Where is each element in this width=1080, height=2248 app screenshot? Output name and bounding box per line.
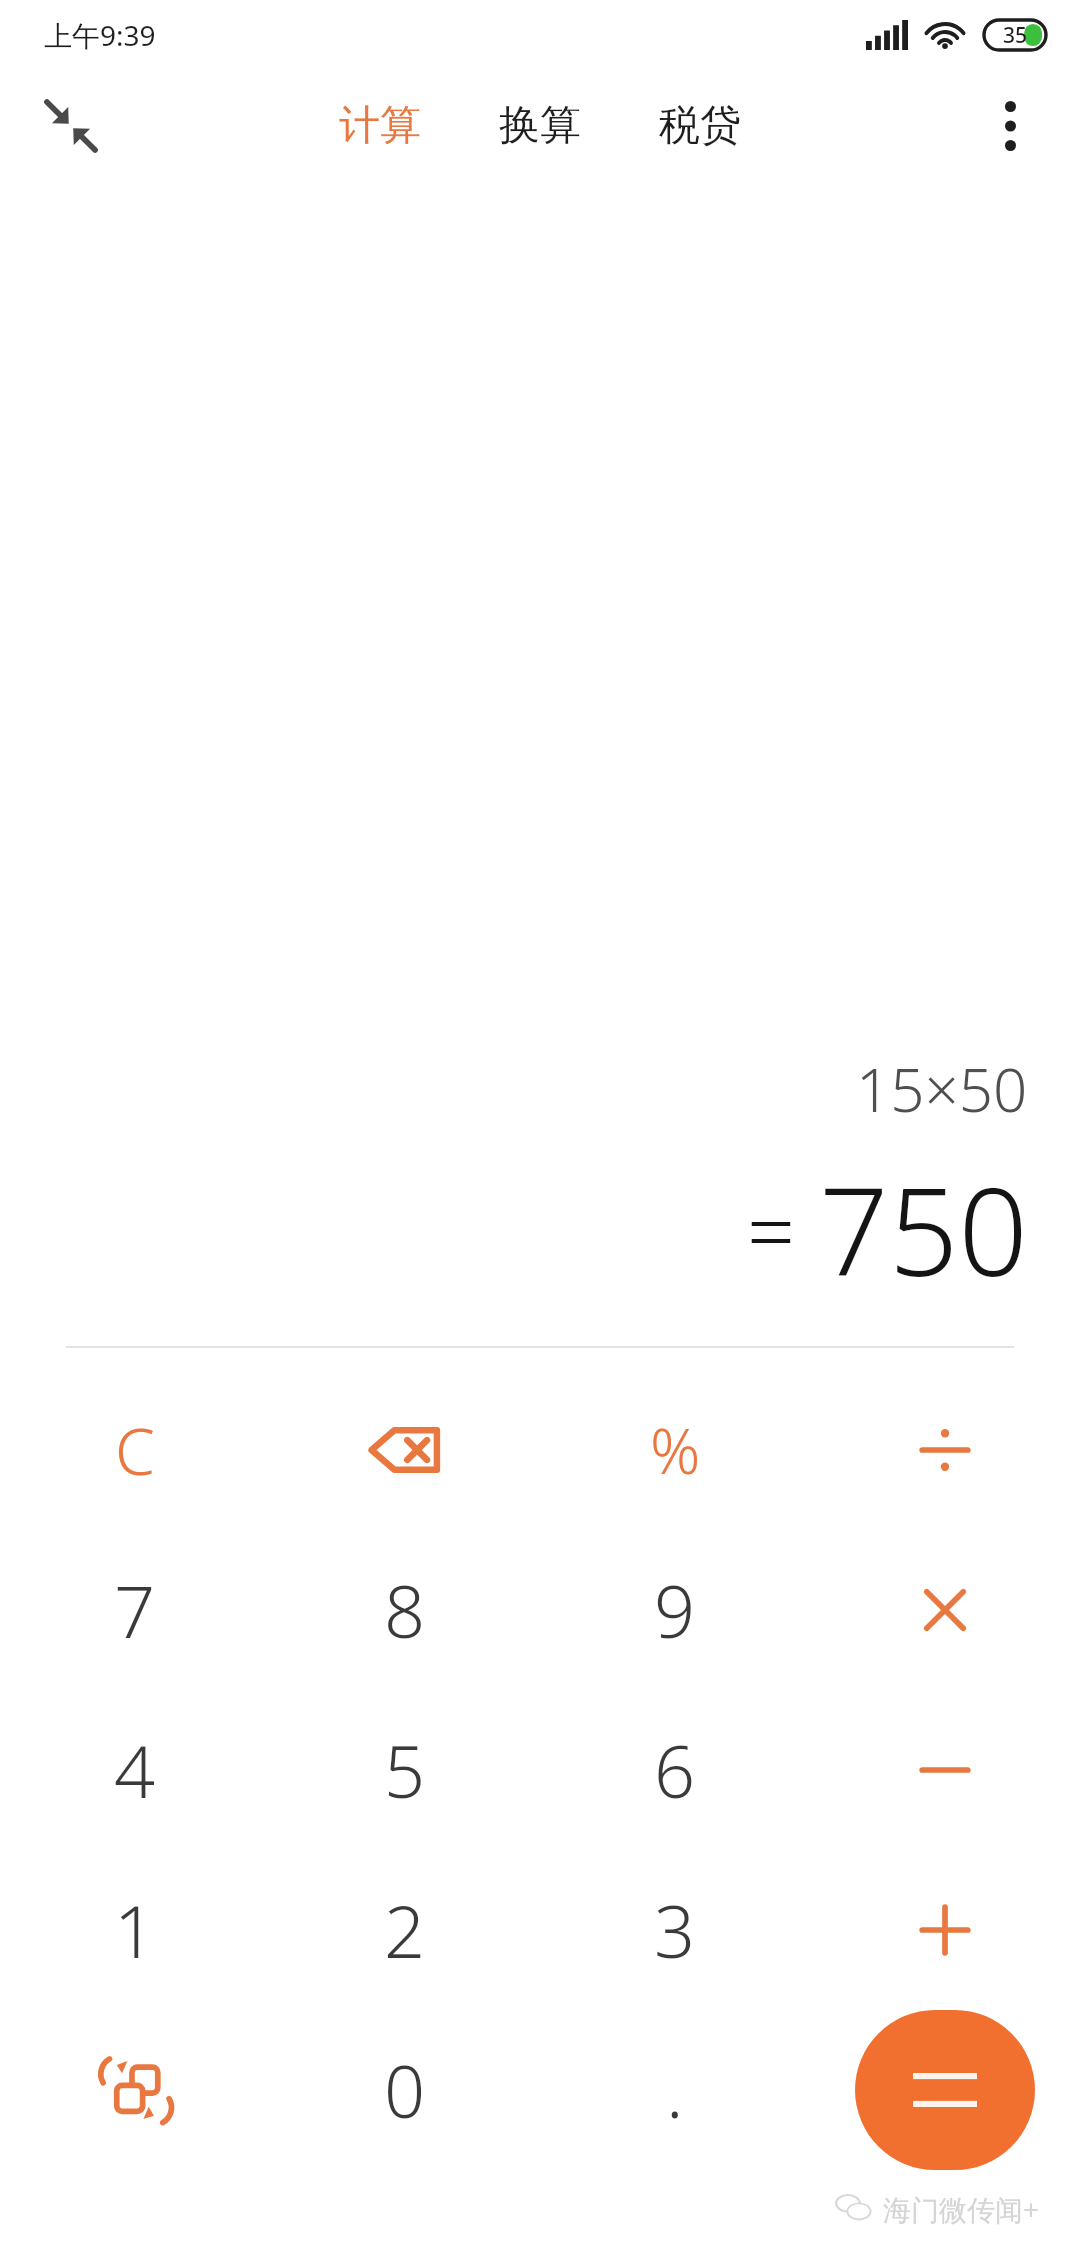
- staticText: 8: [384, 1561, 426, 1659]
- staticText: 海门微传闻+: [883, 2190, 1040, 2228]
- button[interactable]: Percent: [540, 1370, 810, 1530]
- staticText: 1: [114, 1881, 156, 1979]
- staticText: 2: [384, 1881, 426, 1979]
- button[interactable]: .: [540, 2010, 810, 2170]
- other: Divide: [907, 1412, 983, 1488]
- button[interactable]: 9: [540, 1530, 810, 1690]
- staticText: 6: [654, 1721, 696, 1819]
- button[interactable]: Divide: [810, 1370, 1080, 1530]
- other: Multiply: [907, 1572, 983, 1648]
- staticText: 35: [1003, 21, 1028, 50]
- staticText: 7: [114, 1561, 156, 1659]
- staticText: 上午9:39: [44, 16, 156, 54]
- button[interactable]: Unit converter: [0, 2010, 270, 2170]
- button[interactable]: Plus: [810, 1850, 1080, 2010]
- button[interactable]: 7: [0, 1530, 270, 1690]
- staticText: 9: [654, 1561, 696, 1659]
- button[interactable]: 2: [270, 1850, 540, 2010]
- staticText: 计算: [339, 100, 421, 152]
- button[interactable]: More options: [962, 78, 1058, 174]
- other: Plus: [907, 1892, 983, 1968]
- other: Unit converter: [97, 2052, 173, 2128]
- button[interactable]: 4: [0, 1690, 270, 1850]
- staticText: 750: [819, 1146, 1028, 1312]
- button[interactable]: 税贷: [647, 90, 753, 162]
- button[interactable]: Equals: [855, 2010, 1035, 2170]
- button[interactable]: 6: [540, 1690, 810, 1850]
- button[interactable]: Collapse: [16, 71, 126, 181]
- button[interactable]: Backspace: [270, 1370, 540, 1530]
- staticText: 税贷: [659, 100, 741, 152]
- button[interactable]: Clear: [0, 1370, 270, 1530]
- staticText: C: [115, 1407, 155, 1494]
- other: Minus: [907, 1732, 983, 1808]
- staticText: 5: [384, 1721, 426, 1819]
- button[interactable]: 换算: [487, 90, 593, 162]
- button[interactable]: 5: [270, 1690, 540, 1850]
- button[interactable]: 0: [270, 2010, 540, 2170]
- staticText: 换算: [499, 100, 581, 152]
- staticText: 4: [114, 1721, 156, 1819]
- button[interactable]: Multiply: [810, 1530, 1080, 1690]
- staticText: 3: [654, 1881, 696, 1979]
- button[interactable]: 1: [0, 1850, 270, 2010]
- button[interactable]: 计算: [327, 90, 433, 162]
- button[interactable]: 3: [540, 1850, 810, 2010]
- staticText: .: [666, 2041, 684, 2139]
- staticText: 0: [384, 2041, 426, 2139]
- staticText: 15×50: [856, 1048, 1028, 1130]
- staticText: =: [747, 1172, 795, 1286]
- button[interactable]: 8: [270, 1530, 540, 1690]
- button[interactable]: Minus: [810, 1690, 1080, 1850]
- other: Backspace: [367, 1412, 443, 1488]
- staticText: %: [650, 1408, 701, 1492]
